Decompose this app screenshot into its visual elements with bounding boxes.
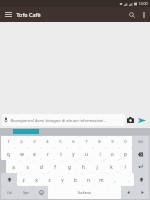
button[interactable]: f xyxy=(48,160,62,173)
button[interactable]: q xyxy=(1,148,15,160)
button[interactable]: Italiano xyxy=(48,186,121,199)
button[interactable]: Open navigation drawer xyxy=(0,7,16,22)
button[interactable]: t xyxy=(54,148,67,160)
button[interactable]: 1 xyxy=(1,136,15,148)
staticText: 9 xyxy=(111,139,114,145)
button[interactable]: Del xyxy=(132,136,149,148)
staticText: t xyxy=(60,151,62,157)
button[interactable]: 5 xyxy=(54,136,67,148)
staticText: r xyxy=(47,151,49,157)
staticText: f xyxy=(54,164,56,170)
button[interactable]: l xyxy=(118,160,132,173)
button[interactable]: , xyxy=(108,173,121,186)
staticText: Italiano xyxy=(78,190,91,195)
staticText: v xyxy=(61,177,64,183)
staticText: 4 xyxy=(46,139,49,145)
button[interactable]: u xyxy=(80,148,93,160)
button[interactable]: w xyxy=(15,148,28,160)
button[interactable]: p xyxy=(119,148,132,160)
staticText: c xyxy=(48,177,51,183)
staticText: k xyxy=(110,164,113,170)
button[interactable]: r xyxy=(41,148,54,160)
button[interactable]: Key xyxy=(135,186,149,199)
staticText: n xyxy=(87,177,90,183)
staticText: Sym xyxy=(23,191,29,195)
button[interactable]: Send message xyxy=(136,114,148,126)
staticText: , xyxy=(114,177,116,183)
staticText: 2 xyxy=(20,139,23,145)
button[interactable]: Key xyxy=(1,173,17,186)
button[interactable]: 9 xyxy=(106,136,119,148)
button[interactable]: 4 xyxy=(41,136,54,148)
button[interactable]: Key xyxy=(132,160,149,173)
button[interactable]: b xyxy=(69,173,82,186)
staticText: a xyxy=(12,164,15,170)
button[interactable]: v xyxy=(56,173,69,186)
button[interactable]: More options xyxy=(139,7,149,22)
staticText: d xyxy=(40,164,43,170)
button[interactable]: o xyxy=(106,148,119,160)
staticText: q xyxy=(7,151,10,157)
staticText: 3 xyxy=(33,139,36,145)
staticText: j xyxy=(96,164,98,170)
button[interactable]: 3 xyxy=(28,136,41,148)
button[interactable]: m xyxy=(95,173,108,186)
button[interactable]: s xyxy=(20,160,34,173)
staticText: o xyxy=(111,151,114,157)
button[interactable]: h xyxy=(76,160,90,173)
button[interactable]: n xyxy=(82,173,95,186)
button[interactable]: Key xyxy=(121,186,135,199)
staticText: z xyxy=(22,177,25,183)
button[interactable]: Key xyxy=(134,173,149,186)
staticText: . xyxy=(127,177,129,183)
button[interactable]: e xyxy=(28,148,41,160)
staticText: u xyxy=(85,151,88,157)
staticText: 5 xyxy=(59,139,62,145)
button[interactable]: . xyxy=(121,173,134,186)
staticText: e xyxy=(33,151,36,157)
button[interactable]: j xyxy=(90,160,104,173)
staticText: m xyxy=(99,177,104,183)
staticText: x xyxy=(35,177,38,183)
button[interactable]: 7 xyxy=(80,136,93,148)
button[interactable]: 6 xyxy=(67,136,80,148)
button[interactable]: z xyxy=(17,173,30,186)
button[interactable]: i xyxy=(93,148,106,160)
staticText: Ctrl xyxy=(7,191,12,195)
staticText: 8 xyxy=(98,139,101,145)
button[interactable]: Ctrl xyxy=(1,186,18,199)
staticText: s xyxy=(26,164,29,170)
button[interactable]: Search xyxy=(125,7,139,22)
button[interactable]: c xyxy=(43,173,56,186)
staticText: i xyxy=(99,151,101,157)
button[interactable]: Sym xyxy=(18,186,34,199)
staticText: 7 xyxy=(85,139,88,145)
button[interactable]: k xyxy=(104,160,118,173)
staticText: Del xyxy=(138,140,143,144)
staticText: 0 xyxy=(124,139,127,145)
staticText: 1 xyxy=(7,139,10,145)
staticText: Tofo Cafè xyxy=(16,11,41,18)
button[interactable]: Key xyxy=(34,186,48,199)
staticText: l xyxy=(124,164,126,170)
button[interactable]: y xyxy=(67,148,80,160)
button[interactable]: Buongiorno! Avrei bisogno di alcune info… xyxy=(2,114,125,126)
button[interactable]: a xyxy=(6,160,20,173)
staticText: p xyxy=(124,151,127,157)
button[interactable]: 2 xyxy=(15,136,28,148)
button[interactable]: Key xyxy=(132,148,149,160)
button[interactable]: g xyxy=(62,160,76,173)
button[interactable]: Take photo xyxy=(125,114,136,126)
button[interactable]: 8 xyxy=(93,136,106,148)
staticText: h xyxy=(82,164,85,170)
button[interactable]: x xyxy=(30,173,43,186)
staticText: b xyxy=(74,177,77,183)
staticText: y xyxy=(72,151,75,157)
staticText: w xyxy=(20,151,24,157)
button[interactable]: 0 xyxy=(119,136,132,148)
staticText: 12:00 xyxy=(138,1,148,6)
button[interactable]: d xyxy=(34,160,48,173)
staticText: 6 xyxy=(72,139,75,145)
staticText: g xyxy=(68,164,71,170)
